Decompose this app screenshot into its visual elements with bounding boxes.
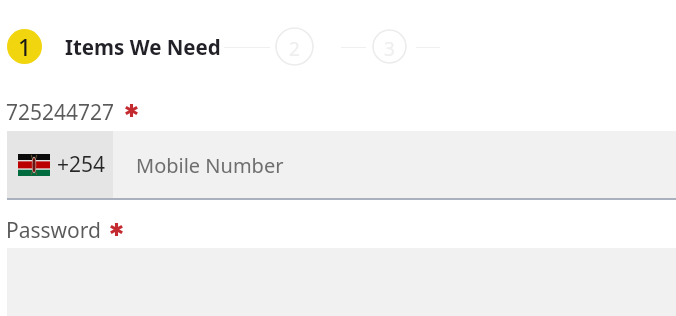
staticText: 3 (384, 36, 395, 62)
staticText: 725244727 (6, 98, 115, 127)
button[interactable]: Mobile Number (7, 131, 676, 198)
staticText: Password (6, 216, 101, 245)
staticText: 2 (289, 36, 300, 62)
staticText: 1 (18, 31, 32, 62)
button[interactable]: Step 3 (372, 29, 407, 64)
staticText: +254 (57, 150, 106, 179)
staticText: Mobile Number (136, 152, 284, 179)
button[interactable]: 1 (7, 29, 219, 64)
button[interactable]: Select country code (7, 131, 113, 198)
button[interactable]: Step 2 (275, 27, 314, 66)
staticText: Items We Need (65, 33, 221, 61)
